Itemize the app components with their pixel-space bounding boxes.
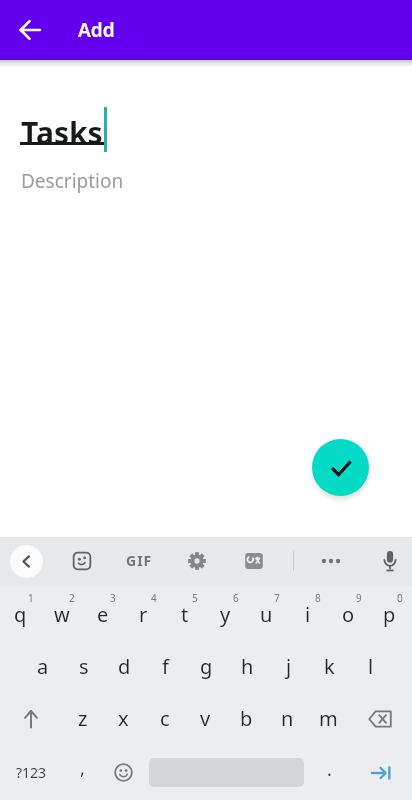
staticText: 0 [397, 591, 403, 605]
staticText: p [383, 601, 396, 628]
button[interactable]: g [186, 640, 227, 692]
staticText: m [319, 705, 338, 732]
button[interactable] [350, 745, 412, 800]
staticText: g [200, 653, 213, 680]
button[interactable]: GIF [126, 551, 153, 570]
staticText: a [37, 653, 49, 680]
button[interactable] [0, 692, 62, 745]
staticText: Tasks [21, 112, 103, 153]
button[interactable]: o [328, 585, 369, 640]
staticText: v [200, 705, 211, 732]
staticText: w [54, 601, 70, 628]
staticText: u [260, 601, 273, 628]
button[interactable]: i [287, 585, 328, 640]
staticText: b [240, 705, 253, 732]
staticText: 9 [356, 591, 362, 605]
staticText: 2 [69, 591, 75, 605]
staticText: 4 [151, 591, 157, 605]
button[interactable]: a [22, 640, 63, 692]
button[interactable] [181, 545, 213, 577]
button[interactable] [10, 545, 43, 578]
staticText: Description [21, 168, 124, 194]
button[interactable]: x [103, 692, 144, 745]
button[interactable]: m [308, 692, 349, 745]
button[interactable]: d [104, 640, 145, 692]
staticText: s [79, 653, 89, 680]
button[interactable] [66, 545, 98, 577]
staticText: 1 [28, 591, 34, 605]
staticText: f [162, 653, 169, 680]
button[interactable]: z [62, 692, 103, 745]
button[interactable]: r [123, 585, 164, 640]
staticText: 5 [192, 591, 198, 605]
button[interactable]: l [350, 640, 391, 692]
staticText: , [80, 756, 85, 781]
staticText: Add [78, 17, 115, 43]
staticText: e [97, 601, 109, 628]
staticText: x [118, 705, 129, 732]
staticText: h [241, 653, 254, 680]
button[interactable]: , [62, 745, 103, 800]
button[interactable]: h [227, 640, 268, 692]
button[interactable] [312, 439, 369, 496]
button[interactable]: k [309, 640, 350, 692]
staticText: q [14, 601, 27, 628]
staticText: ?123 [16, 763, 47, 782]
button[interactable]: . [309, 745, 350, 800]
button[interactable]: n [267, 692, 308, 745]
button[interactable]: e [82, 585, 123, 640]
button[interactable]: w [41, 585, 82, 640]
staticText: d [118, 653, 131, 680]
button[interactable]: j [268, 640, 309, 692]
staticText: n [281, 705, 294, 732]
staticText: 8 [315, 591, 321, 605]
staticText: i [305, 601, 311, 628]
staticText: k [324, 653, 335, 680]
staticText: t [181, 601, 189, 628]
staticText: GIF [126, 551, 153, 570]
button[interactable]: f [145, 640, 186, 692]
button[interactable] [374, 545, 406, 577]
button[interactable]: c [144, 692, 185, 745]
staticText: 3 [110, 591, 116, 605]
staticText: y [220, 601, 231, 628]
staticText: . [327, 757, 332, 782]
staticText: r [139, 601, 148, 628]
button[interactable] [315, 545, 347, 577]
staticText: 7 [274, 591, 280, 605]
staticText: o [342, 601, 355, 628]
button[interactable]: u [246, 585, 287, 640]
button[interactable]: v [185, 692, 226, 745]
staticText: z [78, 705, 88, 732]
button[interactable] [238, 545, 270, 577]
button[interactable] [349, 692, 411, 745]
button[interactable] [103, 745, 144, 800]
staticText: l [368, 653, 374, 680]
button[interactable]: p [369, 585, 410, 640]
button[interactable]: t [164, 585, 205, 640]
button[interactable]: b [226, 692, 267, 745]
button[interactable]: y [205, 585, 246, 640]
button[interactable] [8, 8, 52, 52]
staticText: 6 [233, 591, 239, 605]
button[interactable]: ?123 [0, 745, 62, 800]
staticText: j [286, 653, 292, 680]
staticText: c [160, 705, 170, 732]
button[interactable]: q [0, 585, 41, 640]
button[interactable]: s [63, 640, 104, 692]
